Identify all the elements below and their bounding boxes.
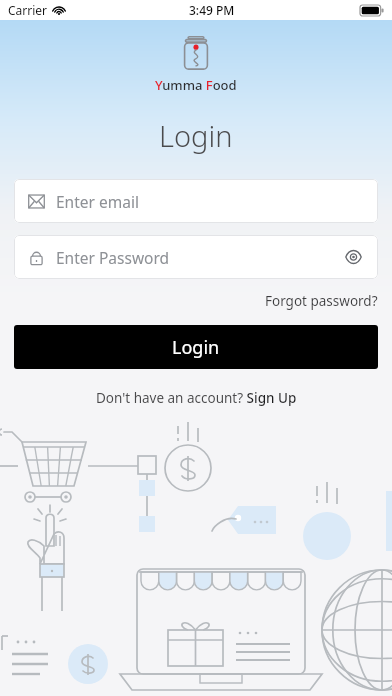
staticText: Don't have an account? Sign Up: [96, 389, 297, 407]
staticText: Forgot password?: [265, 292, 378, 310]
staticText: 3:49 PM: [189, 2, 235, 18]
button[interactable]: Show password: [342, 246, 364, 268]
button[interactable]: Password input: [14, 235, 378, 279]
staticText: Login: [172, 335, 220, 360]
staticText: Enter Password: [56, 247, 170, 268]
staticText: Yumma Food: [155, 76, 237, 94]
staticText: Carrier: [8, 2, 48, 18]
button[interactable]: Email input: [14, 179, 378, 223]
button[interactable]: Forgot password?: [251, 287, 392, 315]
button[interactable]: Login: [14, 325, 378, 369]
button[interactable]: Don't have an account? Sign Up: [88, 385, 305, 411]
staticText: Login: [159, 116, 233, 155]
staticText: Enter email: [56, 191, 139, 212]
